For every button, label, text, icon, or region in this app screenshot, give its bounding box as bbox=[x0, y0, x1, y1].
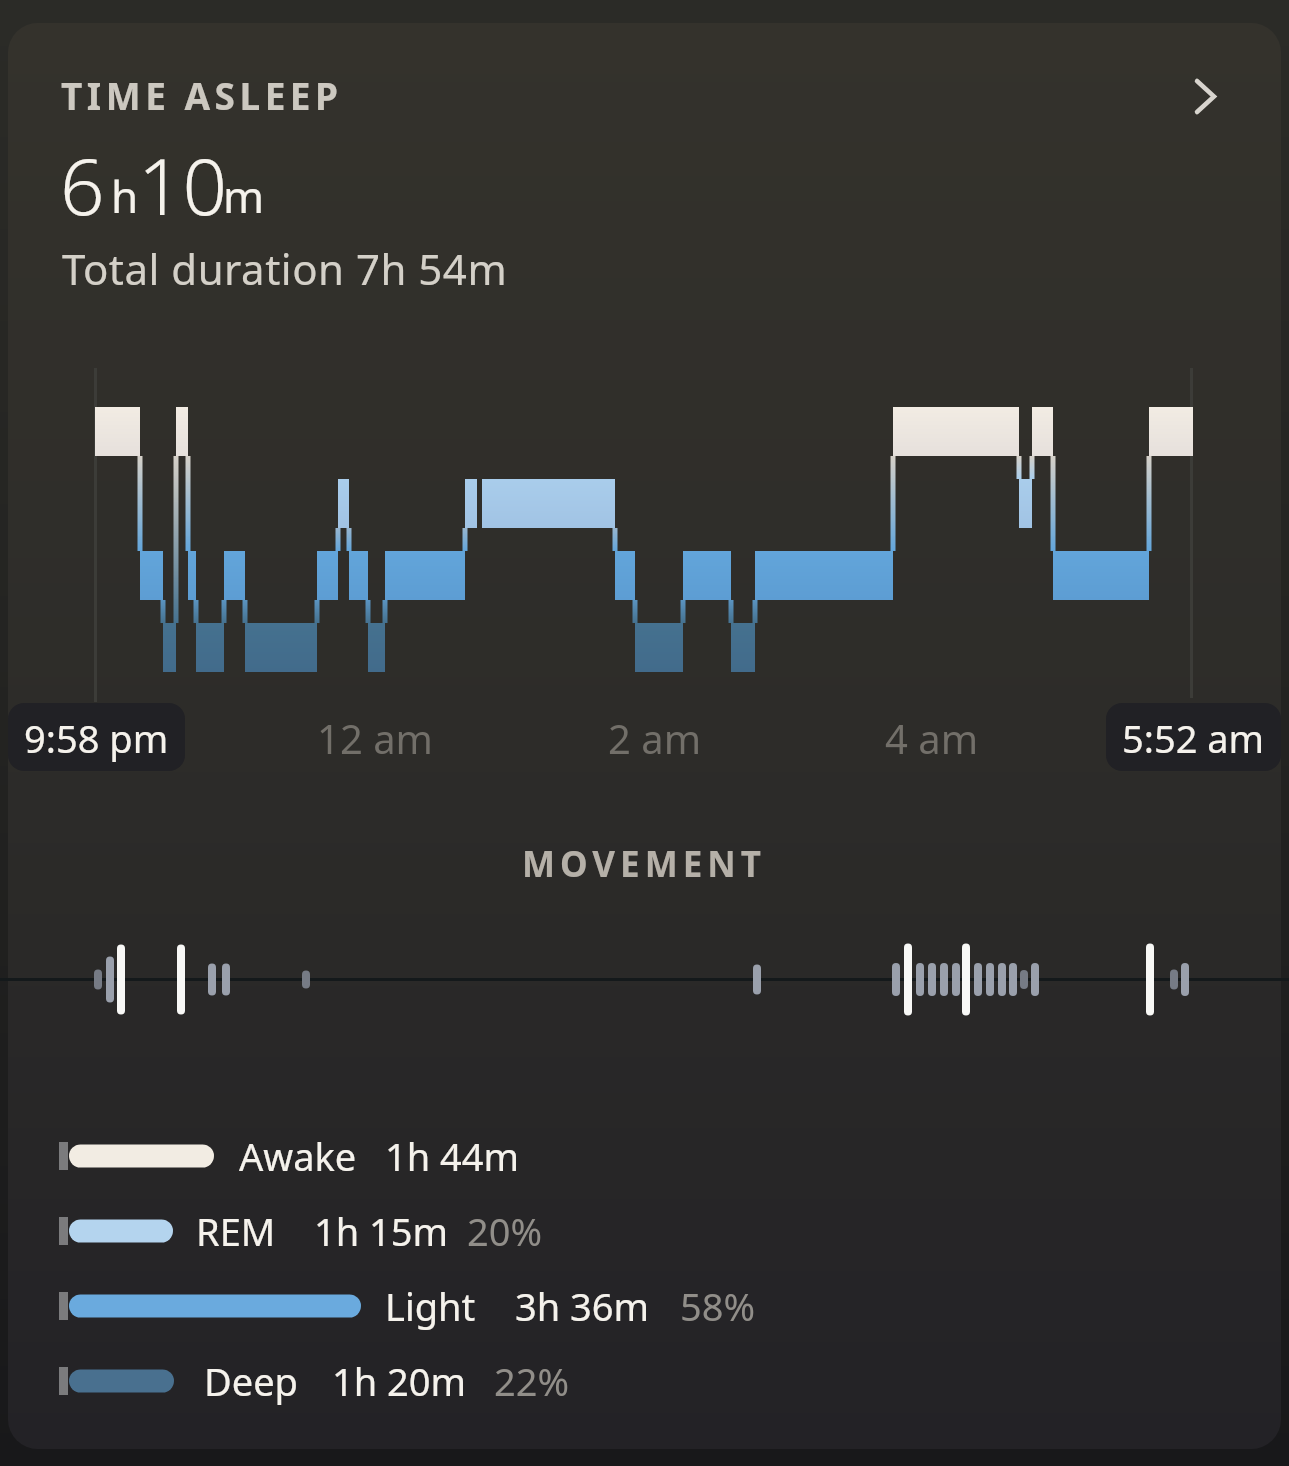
staticText: TIME ASLEEP bbox=[61, 70, 343, 120]
staticText: 4 am bbox=[885, 711, 979, 765]
staticText: Awake bbox=[239, 1130, 357, 1182]
staticText: 1h 44m bbox=[385, 1130, 520, 1182]
staticText: 22% bbox=[494, 1355, 570, 1407]
staticText: 6 bbox=[60, 132, 105, 238]
staticText: 1h 20m bbox=[332, 1355, 467, 1407]
staticText: 2 am bbox=[608, 711, 702, 765]
staticText: 58% bbox=[680, 1280, 756, 1332]
staticText: 9:58 pm bbox=[24, 712, 169, 764]
staticText: 3h 36m bbox=[515, 1280, 650, 1332]
staticText: 5:52 am bbox=[1122, 712, 1265, 764]
staticText: 10 bbox=[138, 132, 228, 238]
staticText: 1h 15m bbox=[314, 1205, 449, 1257]
staticText: Deep bbox=[204, 1355, 298, 1407]
staticText: REM bbox=[196, 1205, 276, 1257]
staticText: h bbox=[111, 166, 139, 226]
staticText: Total duration 7h 54m bbox=[62, 240, 508, 297]
staticText: m bbox=[223, 166, 265, 226]
staticText: MOVEMENT bbox=[522, 840, 766, 888]
staticText: Light bbox=[385, 1280, 476, 1332]
staticText: 20% bbox=[467, 1205, 543, 1257]
button[interactable] bbox=[8, 23, 1281, 303]
staticText: 12 am bbox=[317, 711, 433, 765]
